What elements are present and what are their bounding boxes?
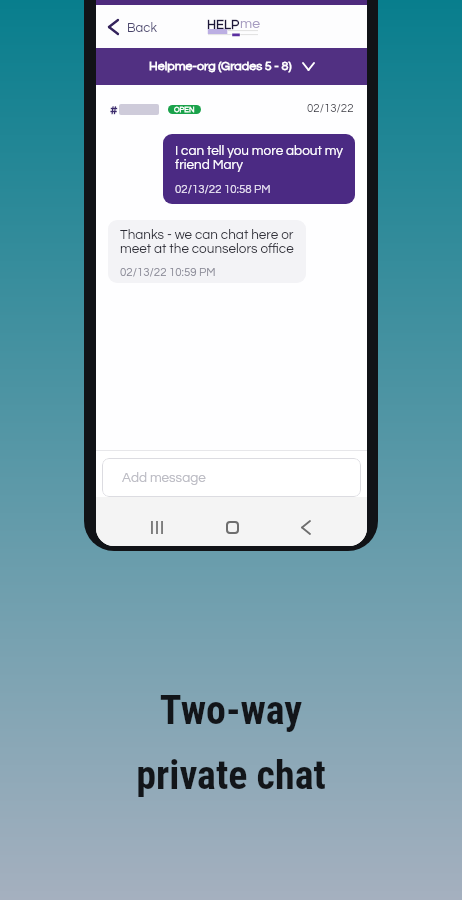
staticText: 02/13/22 10:59 PM [120,267,216,279]
staticText: I can tell you more about my friend Mary [175,144,345,172]
staticText: Two-way [0,687,462,734]
button[interactable]: Back [293,514,319,540]
staticText: Back [127,21,157,34]
staticText: private chat [0,752,462,799]
staticText: HELP [207,18,240,31]
button[interactable]: Add message [102,458,361,497]
button[interactable]: Back [96,12,169,42]
button[interactable]: Recent apps [144,514,170,540]
staticText: 02/13/22 10:58 PM [175,184,271,196]
staticText: Helpme-org (Grades 5 - 8) [149,60,292,73]
staticText: Add message [122,471,206,485]
button[interactable]: Helpme-org (Grades 5 - 8) [96,48,367,85]
button[interactable]: Home [219,514,245,540]
staticText: Thanks - we can chat here or meet at the… [120,228,296,256]
staticText: me [240,17,260,31]
staticText: 02/13/22 [307,103,354,115]
staticText: OPEN [174,106,195,114]
staticText: # [110,103,118,116]
